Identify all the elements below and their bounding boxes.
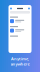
staticText: anywhere [10,61,29,67]
staticText: Anytime, [11,56,29,61]
